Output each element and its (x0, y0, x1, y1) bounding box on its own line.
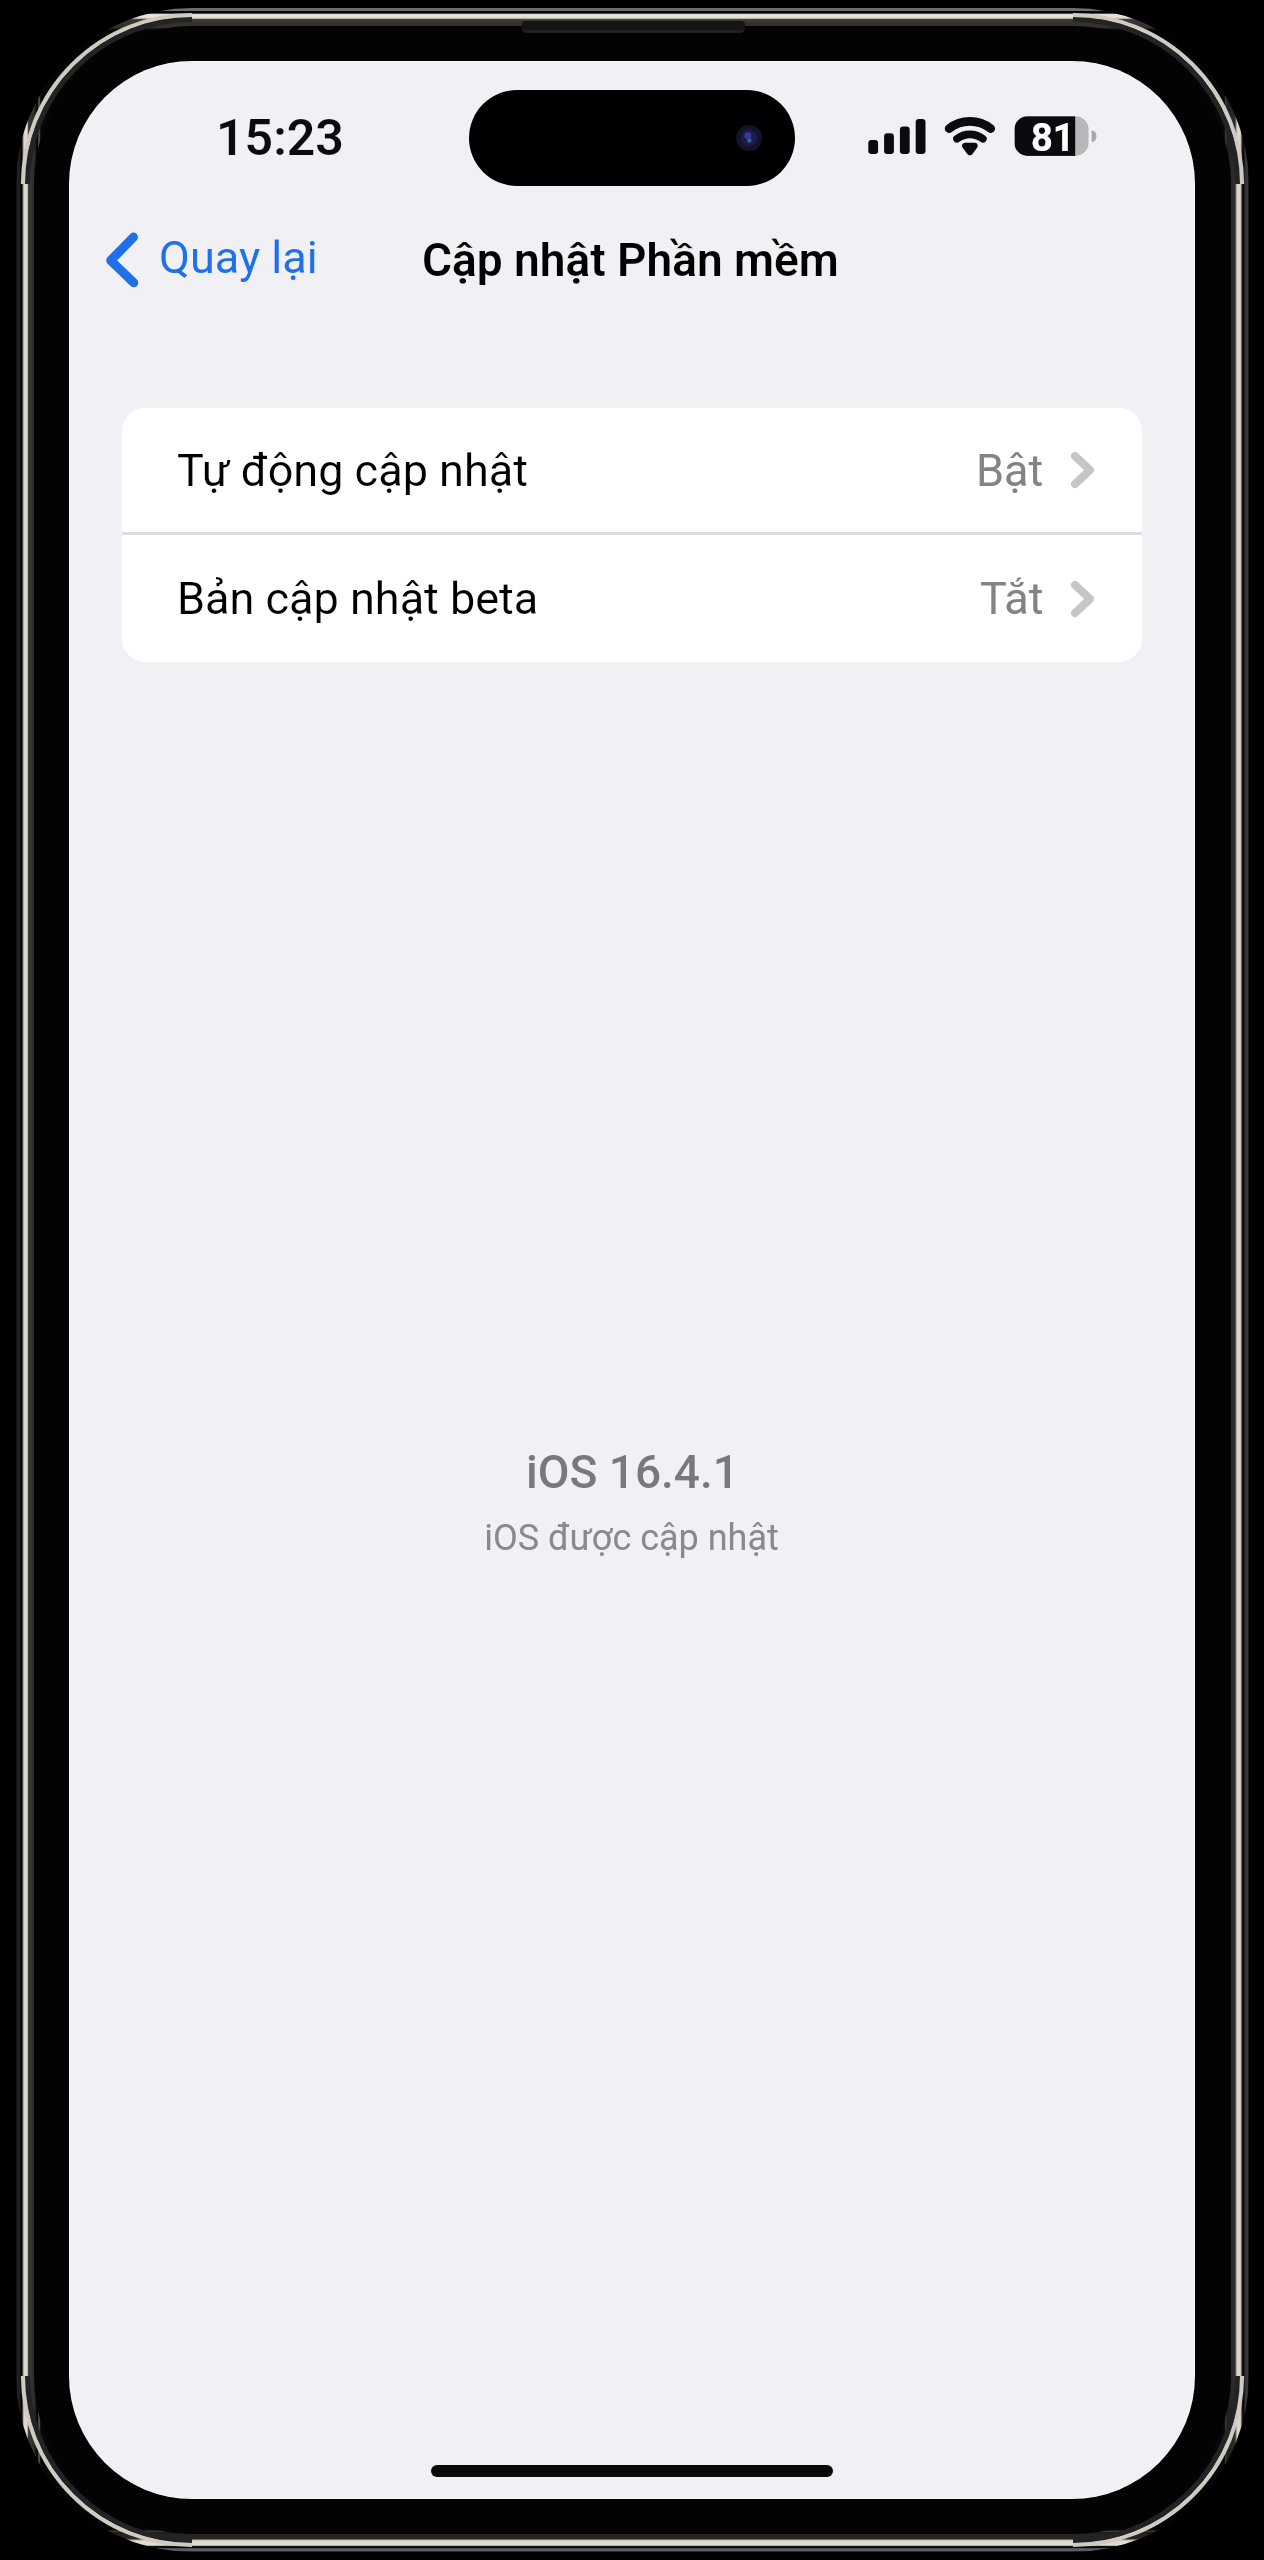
staticText: Cập nhật Phần mềm (422, 233, 839, 287)
button[interactable]: Bản cập nhật beta (122, 535, 1142, 662)
staticText: Tự động cập nhật (177, 444, 528, 497)
staticText: Tắt (980, 572, 1044, 625)
staticText: Quay lại (159, 231, 318, 284)
button[interactable]: Quay lại (94, 222, 328, 296)
staticText: 81 (1031, 116, 1075, 154)
staticText: iOS được cập nhật (484, 1517, 779, 1559)
other: Camera and Face ID sensors (469, 90, 795, 186)
staticText: iOS 16.4.1 (526, 1445, 739, 1499)
staticText: Bật (976, 444, 1044, 497)
staticText: 15:23 (216, 109, 344, 168)
staticText: Bản cập nhật beta (177, 572, 539, 625)
button[interactable]: Tự động cập nhật (122, 408, 1142, 532)
